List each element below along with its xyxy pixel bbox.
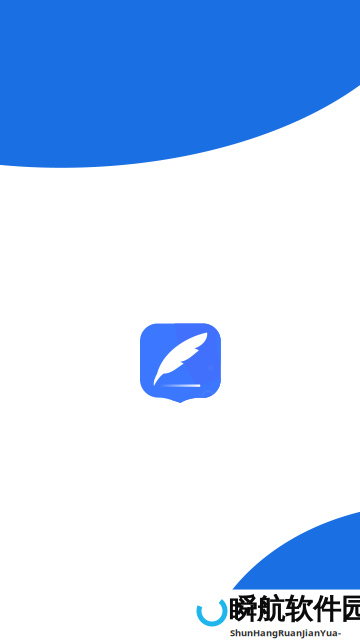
staticText: ShunHangRuanJianYuan — [230, 626, 341, 640]
staticText: 瞬航软件园 — [229, 592, 360, 626]
